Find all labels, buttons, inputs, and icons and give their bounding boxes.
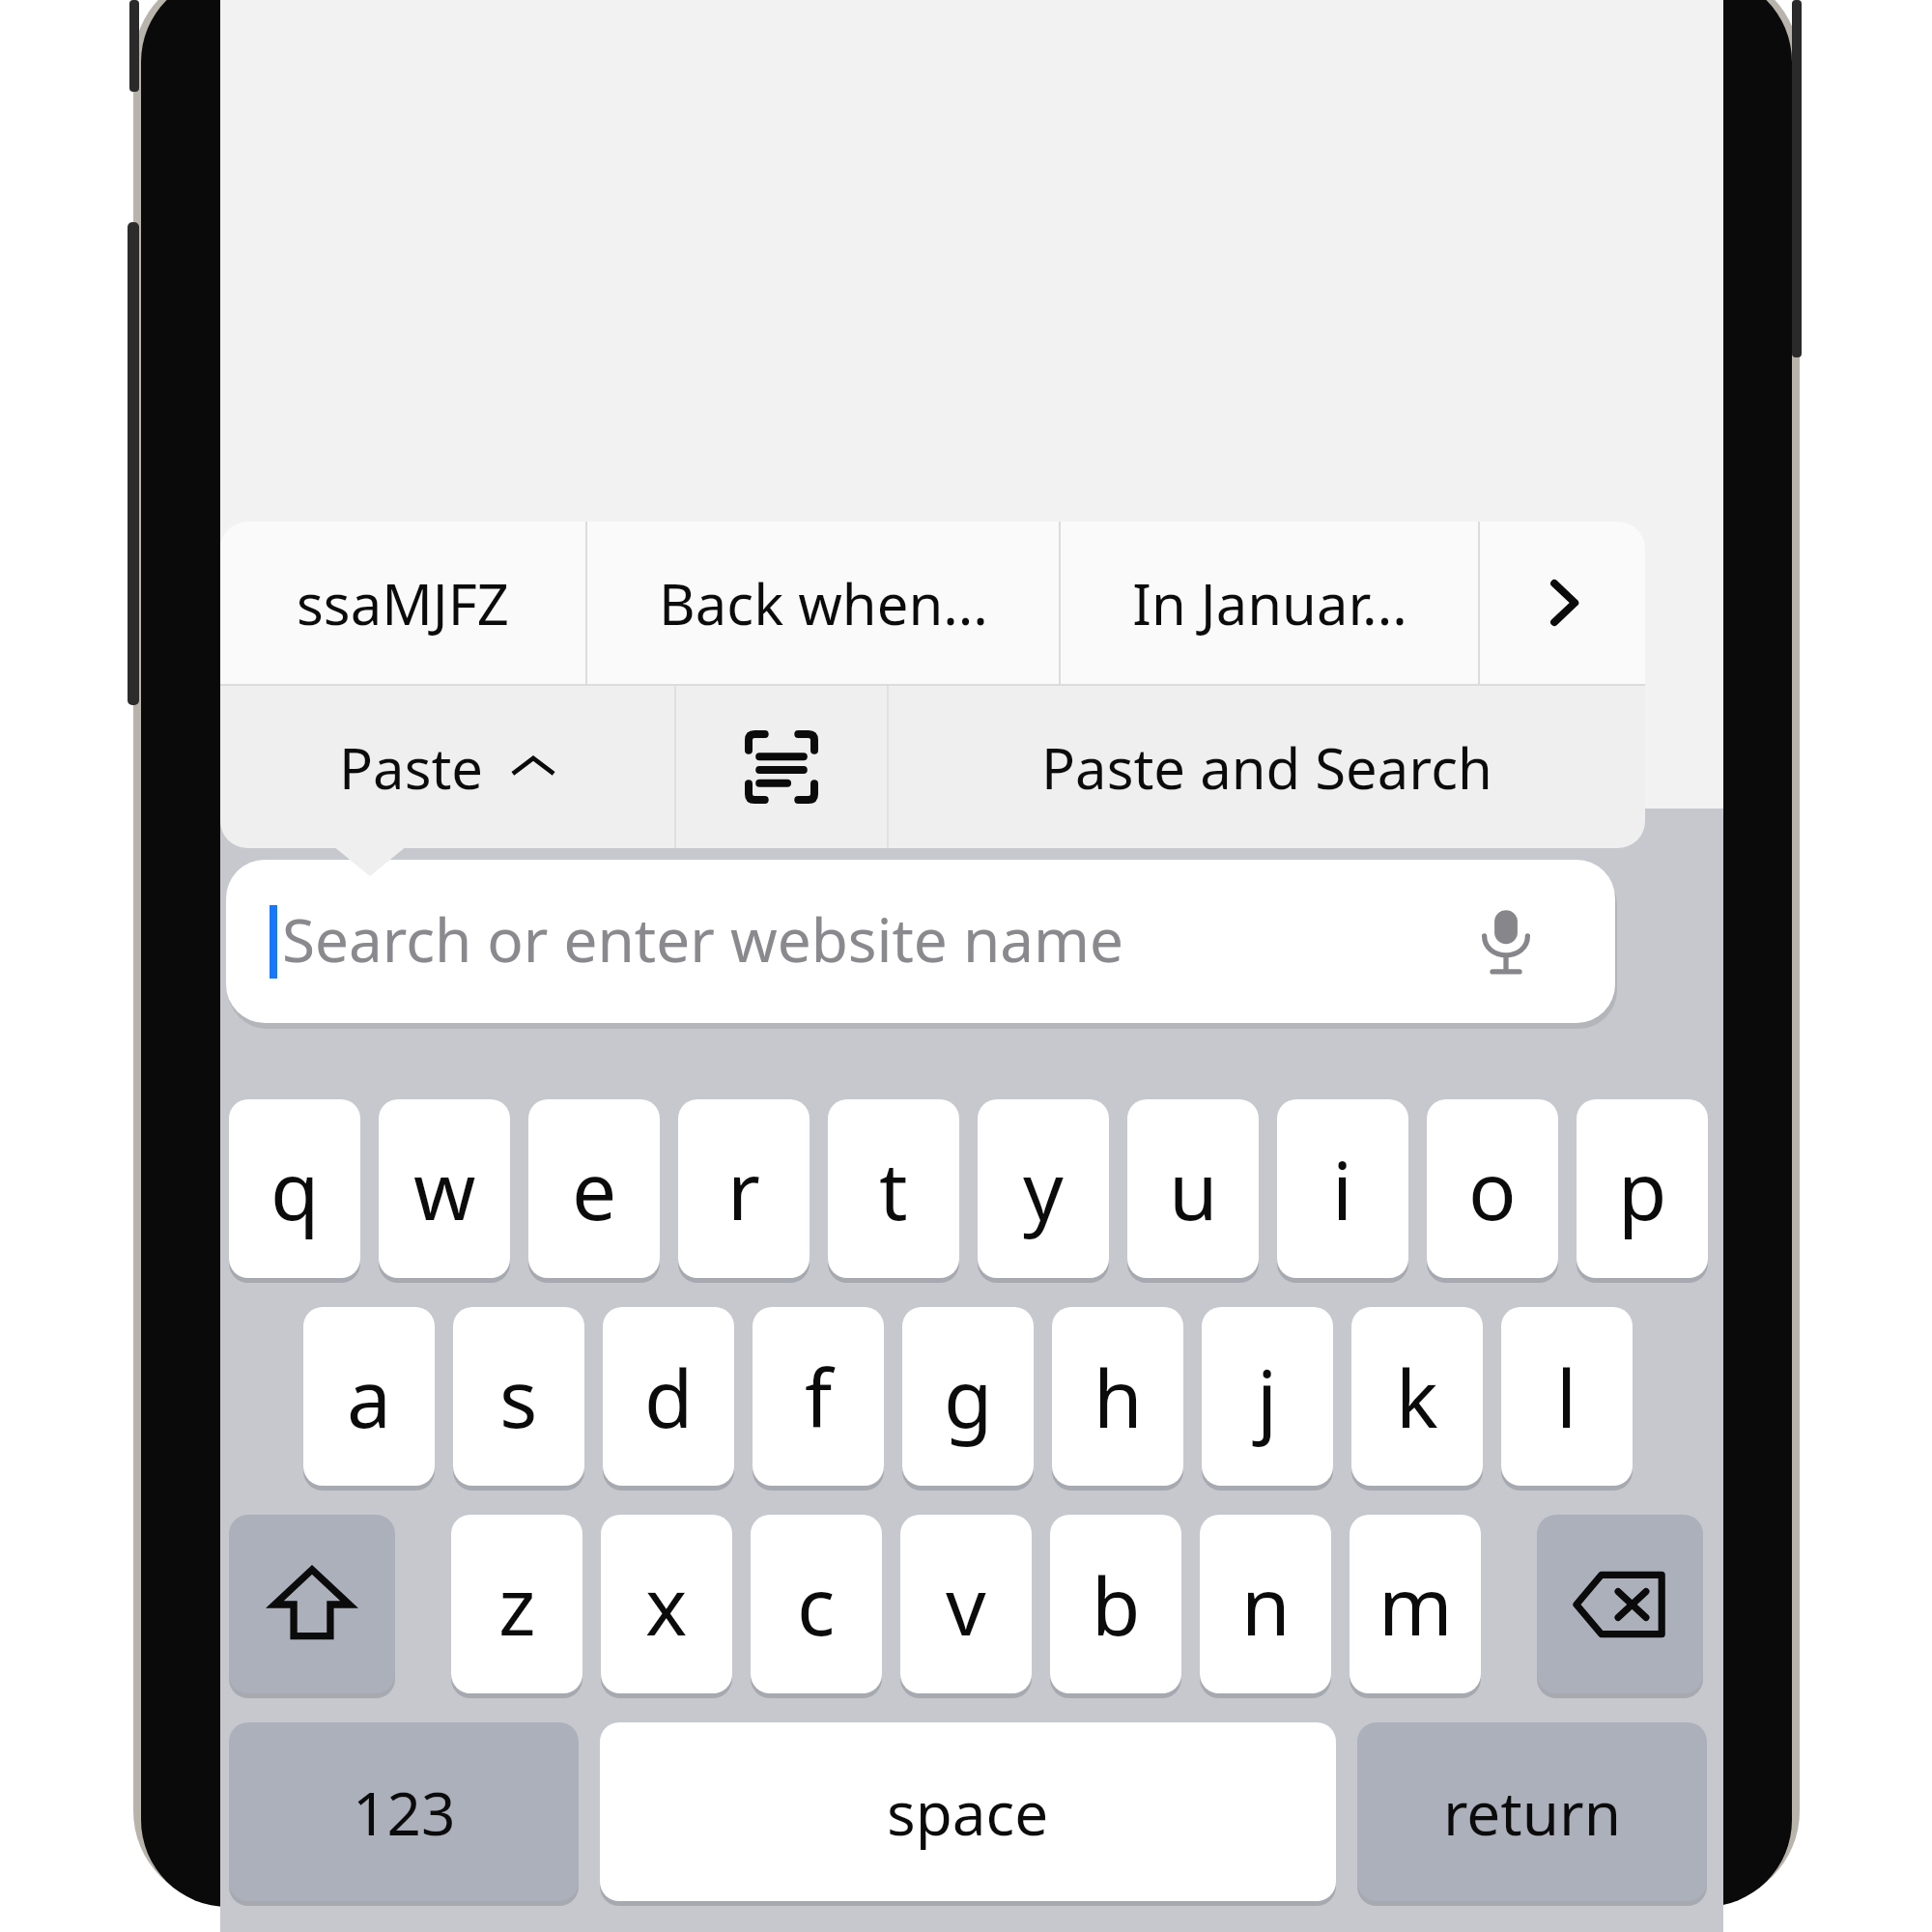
staticText: s bbox=[499, 1343, 538, 1451]
button[interactable]: m bbox=[1350, 1515, 1481, 1693]
button[interactable]: h bbox=[1052, 1307, 1183, 1486]
staticText: 123 bbox=[353, 1772, 456, 1853]
button[interactable]: y bbox=[978, 1099, 1109, 1278]
button[interactable]: j bbox=[1202, 1307, 1333, 1486]
staticText: g bbox=[944, 1343, 993, 1451]
staticText: v bbox=[946, 1550, 986, 1659]
staticText: h bbox=[1094, 1343, 1143, 1451]
button[interactable]: o bbox=[1427, 1099, 1558, 1278]
staticText: w bbox=[413, 1135, 476, 1243]
button[interactable]: c bbox=[751, 1515, 882, 1693]
staticText: d bbox=[644, 1343, 694, 1451]
button[interactable]: x bbox=[601, 1515, 732, 1693]
button[interactable]: n bbox=[1200, 1515, 1331, 1693]
staticText: space bbox=[887, 1772, 1049, 1853]
button[interactable]: u bbox=[1127, 1099, 1259, 1278]
button[interactable]: space bbox=[600, 1722, 1336, 1901]
button[interactable]: r bbox=[678, 1099, 810, 1278]
button[interactable]: z bbox=[451, 1515, 582, 1693]
staticText: Paste and Search bbox=[1041, 729, 1492, 806]
button[interactable]: Shift bbox=[229, 1515, 395, 1693]
staticText: e bbox=[572, 1135, 617, 1243]
staticText: q bbox=[270, 1135, 320, 1243]
button[interactable]: d bbox=[603, 1307, 734, 1486]
button[interactable]: e bbox=[528, 1099, 660, 1278]
staticText: n bbox=[1241, 1550, 1291, 1659]
staticText: ssaMJFZ bbox=[297, 565, 509, 641]
staticText: Paste bbox=[339, 729, 484, 806]
staticText: k bbox=[1396, 1343, 1438, 1451]
staticText: b bbox=[1092, 1550, 1141, 1659]
staticText: r bbox=[727, 1135, 760, 1243]
button[interactable]: t bbox=[828, 1099, 959, 1278]
button[interactable]: b bbox=[1050, 1515, 1181, 1693]
button[interactable]: Search or enter website name bbox=[226, 860, 1615, 1023]
staticText: u bbox=[1169, 1135, 1218, 1243]
staticText: t bbox=[879, 1135, 908, 1243]
staticText: a bbox=[347, 1343, 392, 1451]
button[interactable]: More suggestions bbox=[1480, 522, 1645, 684]
button[interactable]: Backspace bbox=[1537, 1515, 1703, 1693]
staticText: c bbox=[797, 1550, 836, 1659]
staticText: f bbox=[805, 1343, 833, 1451]
button[interactable]: w bbox=[379, 1099, 510, 1278]
button[interactable]: Back when... bbox=[587, 522, 1059, 684]
staticText: return bbox=[1443, 1772, 1621, 1853]
staticText: Search or enter website name bbox=[282, 898, 1123, 980]
button[interactable]: In Januar... bbox=[1061, 522, 1478, 684]
button[interactable]: Voice search bbox=[1463, 896, 1549, 983]
staticText: o bbox=[1468, 1135, 1517, 1243]
button[interactable]: return bbox=[1357, 1722, 1707, 1901]
button[interactable]: Paste and Search bbox=[889, 686, 1645, 848]
staticText: l bbox=[1556, 1343, 1577, 1451]
staticText: In Januar... bbox=[1132, 565, 1407, 641]
button[interactable]: a bbox=[303, 1307, 435, 1486]
button[interactable]: Scan text bbox=[676, 686, 887, 848]
button[interactable]: ssaMJFZ bbox=[220, 522, 585, 684]
button[interactable]: g bbox=[902, 1307, 1034, 1486]
button[interactable]: v bbox=[900, 1515, 1032, 1693]
button[interactable]: l bbox=[1501, 1307, 1633, 1486]
staticText: x bbox=[645, 1550, 688, 1659]
button[interactable]: s bbox=[453, 1307, 584, 1486]
staticText: Back when... bbox=[659, 565, 988, 641]
button[interactable]: Paste bbox=[220, 686, 674, 848]
button[interactable]: f bbox=[753, 1307, 884, 1486]
staticText: m bbox=[1378, 1550, 1453, 1659]
staticText: j bbox=[1257, 1343, 1278, 1451]
staticText: p bbox=[1618, 1135, 1667, 1243]
staticText: y bbox=[1023, 1135, 1064, 1243]
staticText: z bbox=[498, 1550, 536, 1659]
button[interactable]: k bbox=[1351, 1307, 1483, 1486]
button[interactable]: q bbox=[229, 1099, 360, 1278]
staticText: i bbox=[1332, 1135, 1353, 1243]
button[interactable]: 123 bbox=[229, 1722, 579, 1901]
button[interactable]: i bbox=[1277, 1099, 1408, 1278]
button[interactable]: p bbox=[1577, 1099, 1708, 1278]
